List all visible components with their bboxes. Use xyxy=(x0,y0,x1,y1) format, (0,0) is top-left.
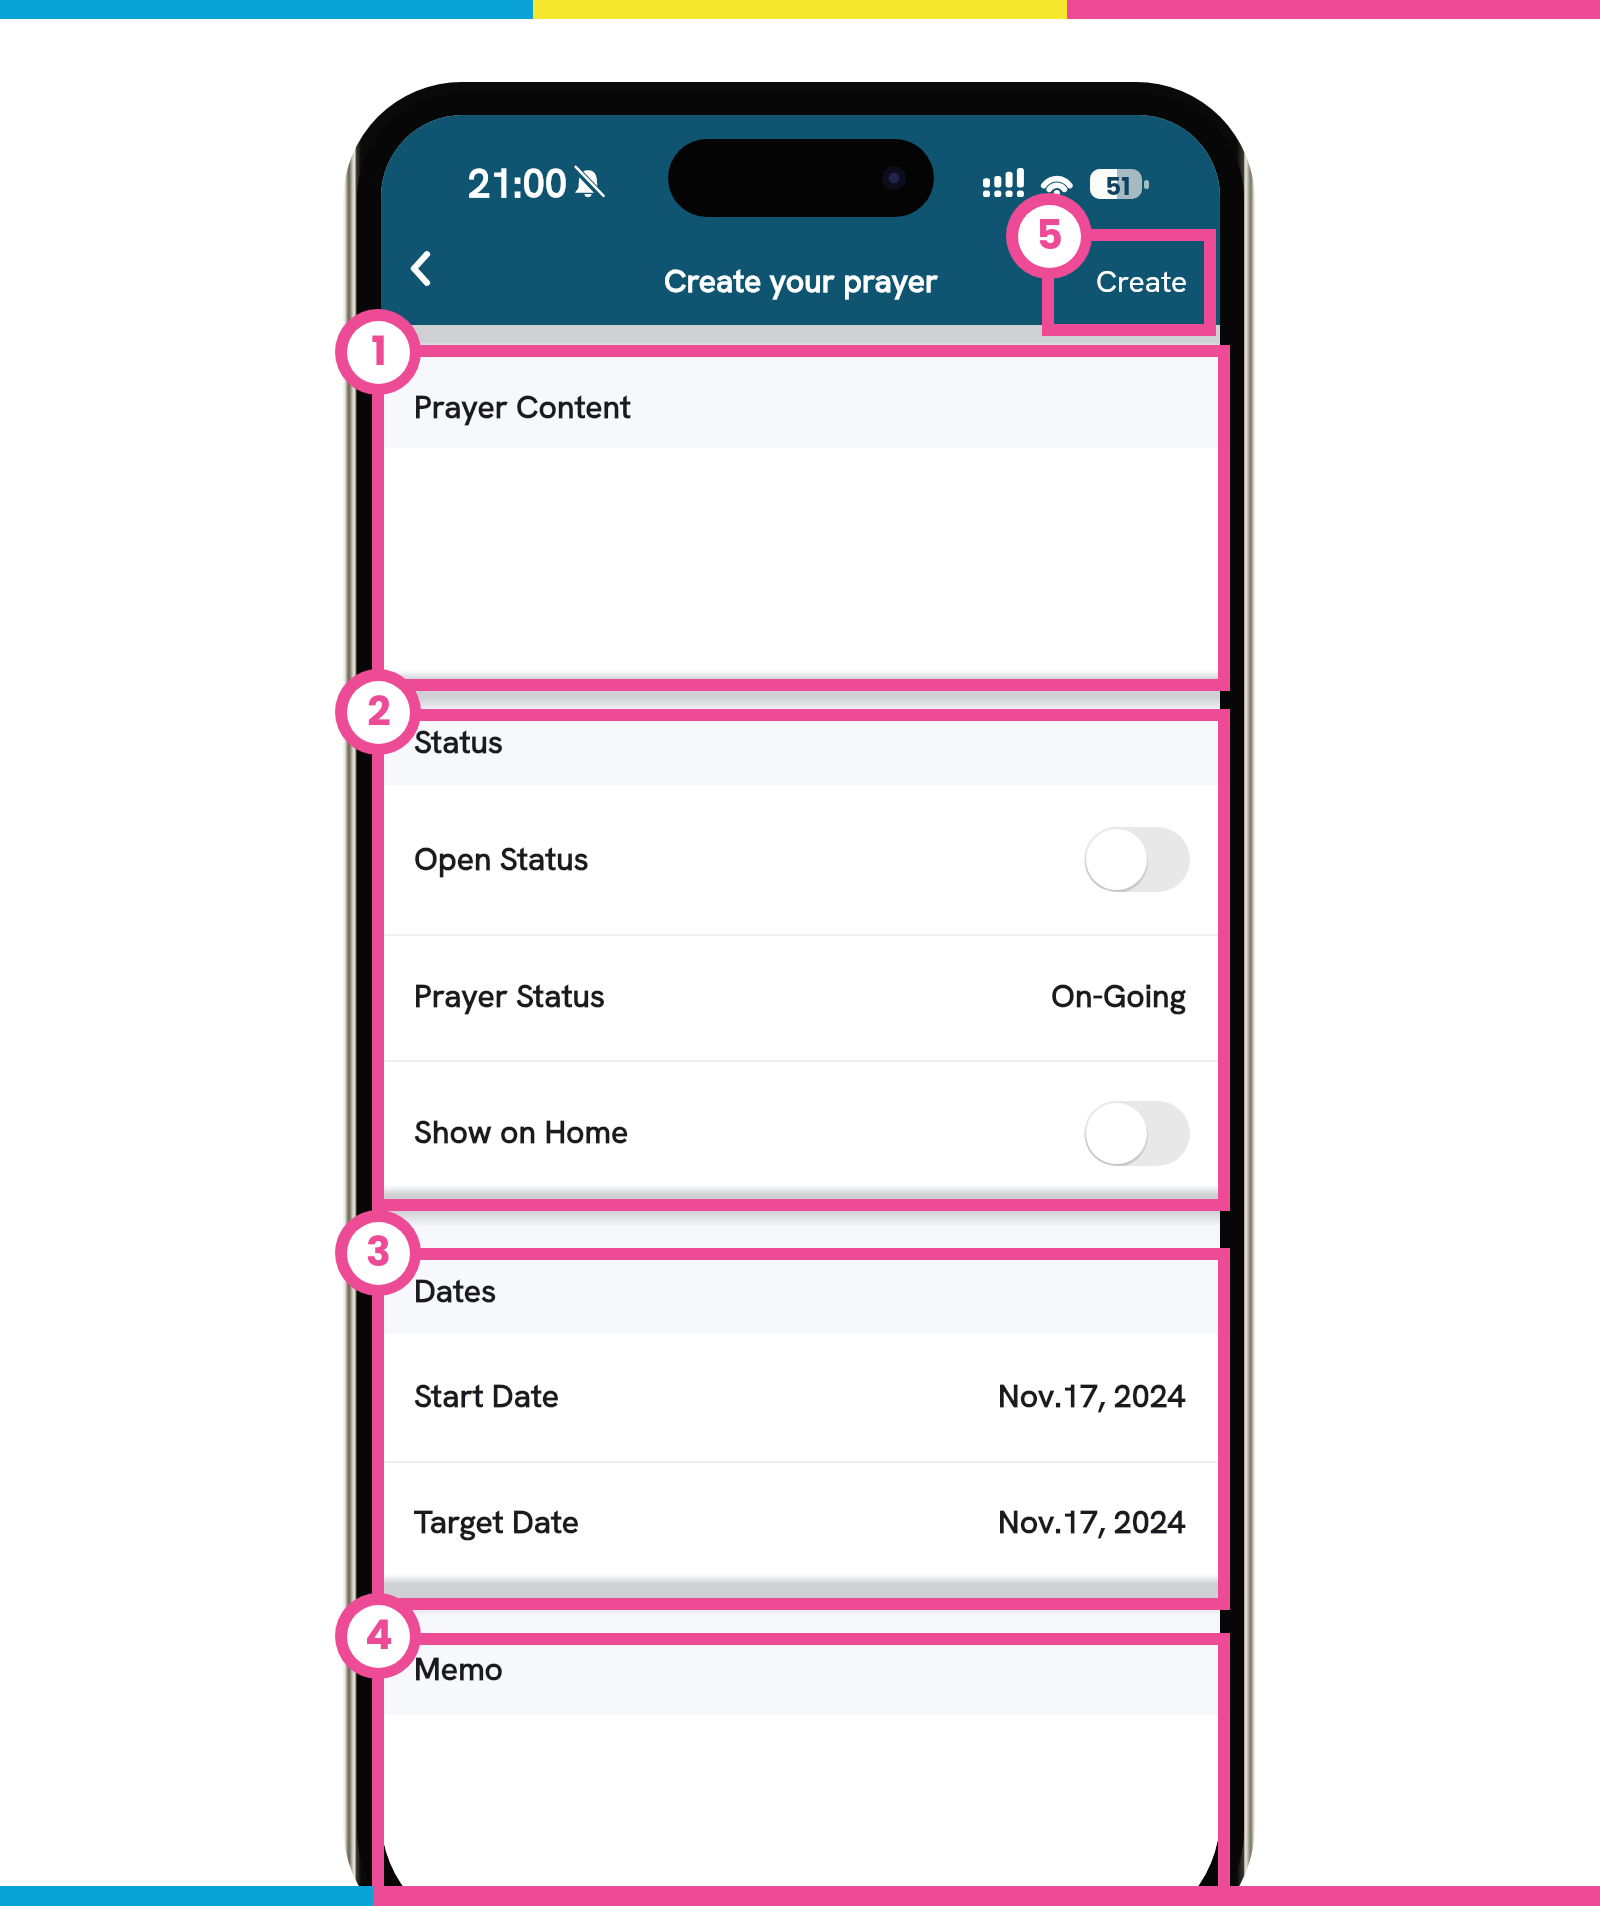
staticText: Prayer Content xyxy=(414,386,632,428)
button[interactable]: Toggle xyxy=(1084,827,1190,892)
button[interactable]: Back xyxy=(389,237,451,299)
staticText: 4 xyxy=(365,1606,393,1663)
staticText: Create your prayer xyxy=(664,260,938,302)
staticText: 3 xyxy=(366,1223,391,1280)
staticText: Target Date xyxy=(414,1501,580,1543)
staticText: Open Status xyxy=(414,838,589,880)
button[interactable]: Create xyxy=(1079,252,1205,318)
staticText: Create xyxy=(1096,262,1188,301)
button[interactable]: Toggle xyxy=(1084,1101,1190,1166)
staticText: 21:00 xyxy=(468,157,568,209)
staticText: Nov.17, 2024 xyxy=(998,1375,1186,1417)
staticText: 2 xyxy=(367,682,391,739)
staticText: Prayer Status xyxy=(414,975,606,1017)
staticText: Show on Home xyxy=(414,1111,629,1153)
staticText: Memo xyxy=(414,1648,504,1690)
staticText: Nov.17, 2024 xyxy=(998,1501,1186,1543)
staticText: 51 xyxy=(1105,169,1131,199)
staticText: Status xyxy=(414,721,504,763)
staticText: Dates xyxy=(414,1270,497,1312)
staticText: 1 xyxy=(371,322,387,379)
staticText: 5 xyxy=(1036,206,1063,263)
staticText: Start Date xyxy=(414,1375,559,1417)
staticText: On-Going xyxy=(1051,975,1186,1017)
